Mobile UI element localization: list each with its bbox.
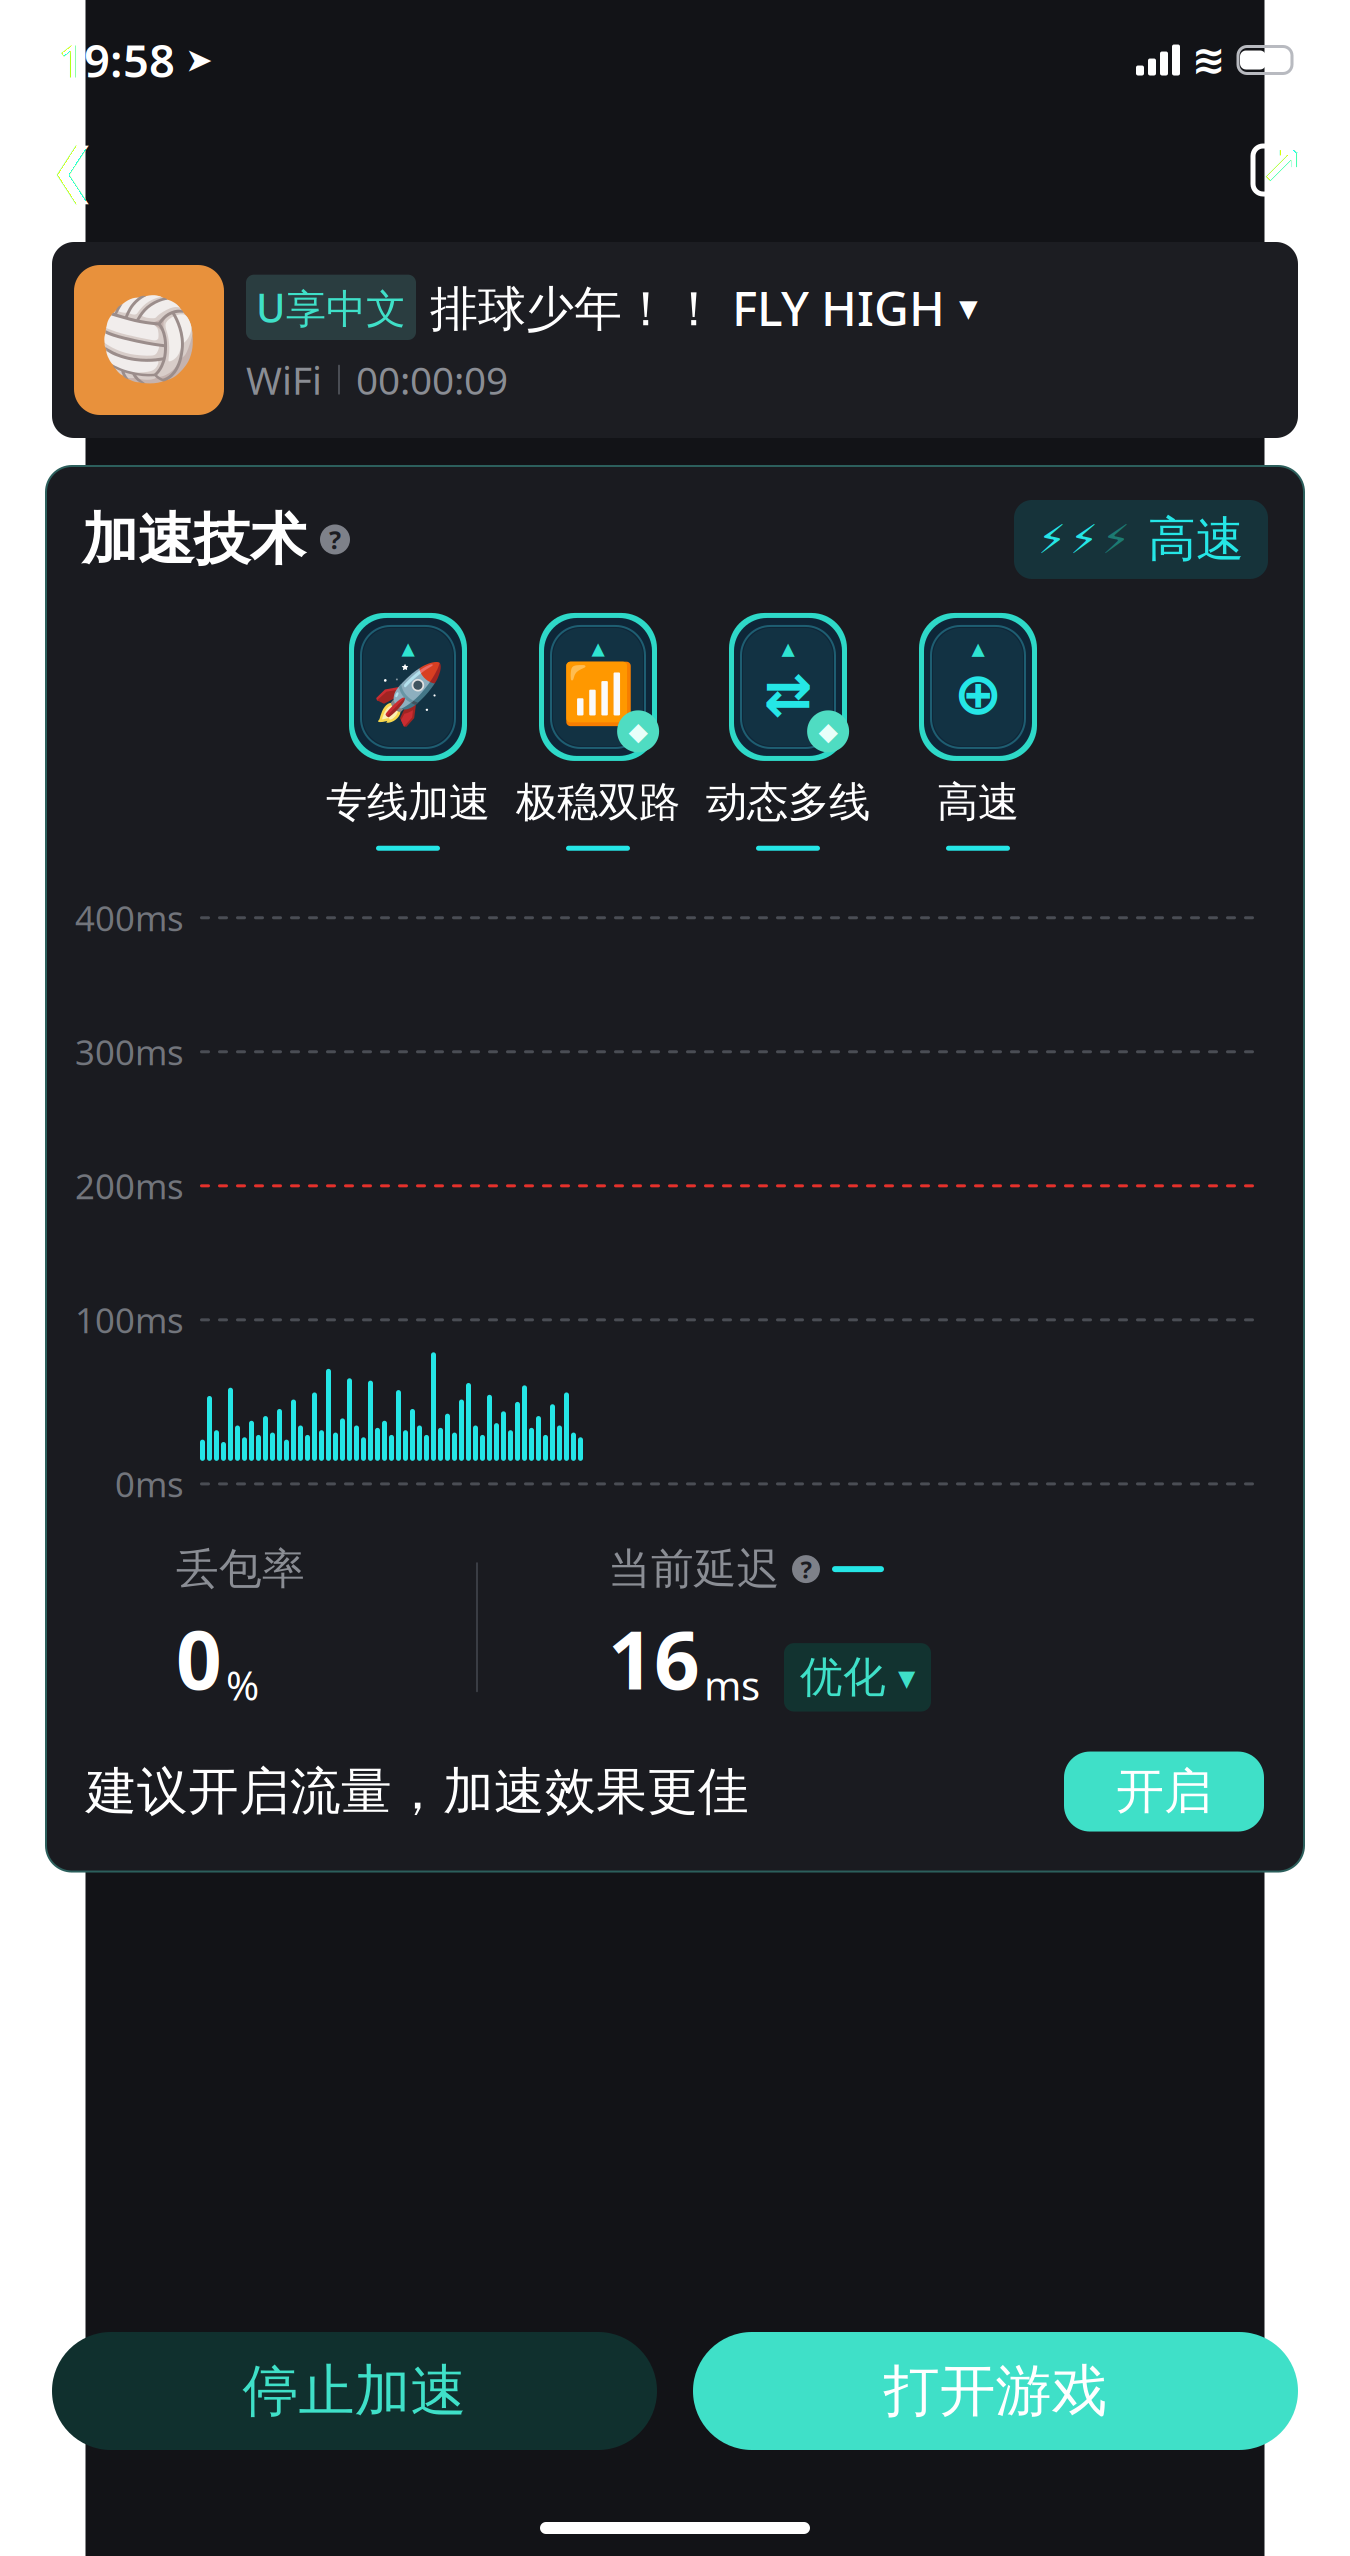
staticText: 0 [176,1605,222,1711]
staticText: 0ms [115,1461,184,1507]
staticText: ⊕ [953,660,1002,727]
staticText: ▾ [959,286,978,328]
staticText: ▲ [781,639,794,658]
staticText: 建议开启流量，加速效果更佳 [86,1760,749,1823]
button[interactable]: Share [1232,125,1322,215]
staticText: 优化 [800,1651,886,1703]
staticText: 当前延迟 [608,1543,780,1595]
staticText: 开启 [1116,1762,1212,1821]
staticText: 高速 [1148,510,1244,569]
staticText: ? [329,523,341,556]
staticText: ⚡︎ [1070,517,1098,562]
button[interactable]: ▲ [503,613,693,851]
staticText: 100ms [75,1297,184,1343]
button[interactable]: 停止加速 [52,2332,657,2450]
staticText: 加速技术 [82,505,306,574]
staticText: ⇄ [763,660,812,727]
staticText: ▲ [971,639,984,658]
staticText: 19:58 [58,30,175,90]
staticText: 排球少年！！ FLY HIGH [430,275,945,339]
staticText: 动态多线 [706,777,870,828]
staticText: ◆ [819,717,838,746]
staticText: 极稳双路 [516,777,680,828]
staticText: WiFi [246,354,322,405]
staticText: ⚡︎ [1038,517,1066,562]
staticText: ▲ [401,639,414,658]
staticText: 📶 [561,660,634,727]
staticText: ➤ [185,41,213,79]
staticText: ≋ [1192,37,1226,83]
staticText: 打开游戏 [883,2357,1107,2425]
button[interactable]: Back [28,125,118,215]
staticText: 丢包率 [176,1543,305,1595]
button[interactable]: 优化 [784,1643,931,1711]
staticText: 300ms [75,1029,184,1075]
button[interactable]: ▲ [313,613,503,851]
staticText: ⚡︎ [1102,517,1130,562]
staticText: % [226,1658,259,1711]
staticText: ms [704,1658,760,1711]
staticText: ▲ [591,639,604,658]
staticText: 高速 [937,777,1019,828]
staticText: ? [800,1553,811,1585]
button[interactable]: ⚡︎ [1014,500,1268,579]
staticText: 200ms [75,1163,184,1209]
staticText: 🏐 [99,294,199,386]
button[interactable]: 开启 [1064,1751,1264,1831]
staticText: U享中文 [256,281,406,334]
staticText: ◆ [629,717,648,746]
button[interactable]: 打开游戏 [693,2332,1298,2450]
staticText: 00:00:09 [356,354,508,405]
staticText: ↗ [1258,136,1303,196]
button[interactable]: ▲ [693,613,883,851]
staticText: 停止加速 [242,2357,466,2425]
button[interactable]: 🏐 [52,242,1298,438]
staticText: ▾ [898,1658,915,1697]
staticText: 400ms [75,895,184,941]
button[interactable]: ▲ [883,613,1073,851]
staticText: 🚀 [371,660,444,727]
staticText: 16 [608,1605,700,1711]
staticText: 专线加速 [326,777,490,828]
staticText: ❮ [48,137,97,203]
